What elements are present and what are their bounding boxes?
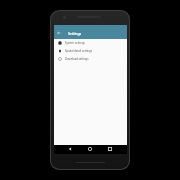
staticText: Spatial detail settings xyxy=(65,49,92,53)
staticText: Settings xyxy=(68,31,82,36)
staticText: Download settings xyxy=(65,57,89,61)
button[interactable]: System settings xyxy=(54,39,127,47)
button[interactable]: Back xyxy=(66,145,74,153)
staticText: System settings xyxy=(65,41,85,45)
button[interactable]: Navigate up xyxy=(54,27,63,39)
button[interactable]: Download settings xyxy=(54,55,127,63)
button[interactable]: Spatial detail settings xyxy=(54,47,127,55)
button[interactable]: Recent apps xyxy=(106,145,114,153)
button[interactable]: Home xyxy=(86,145,94,153)
